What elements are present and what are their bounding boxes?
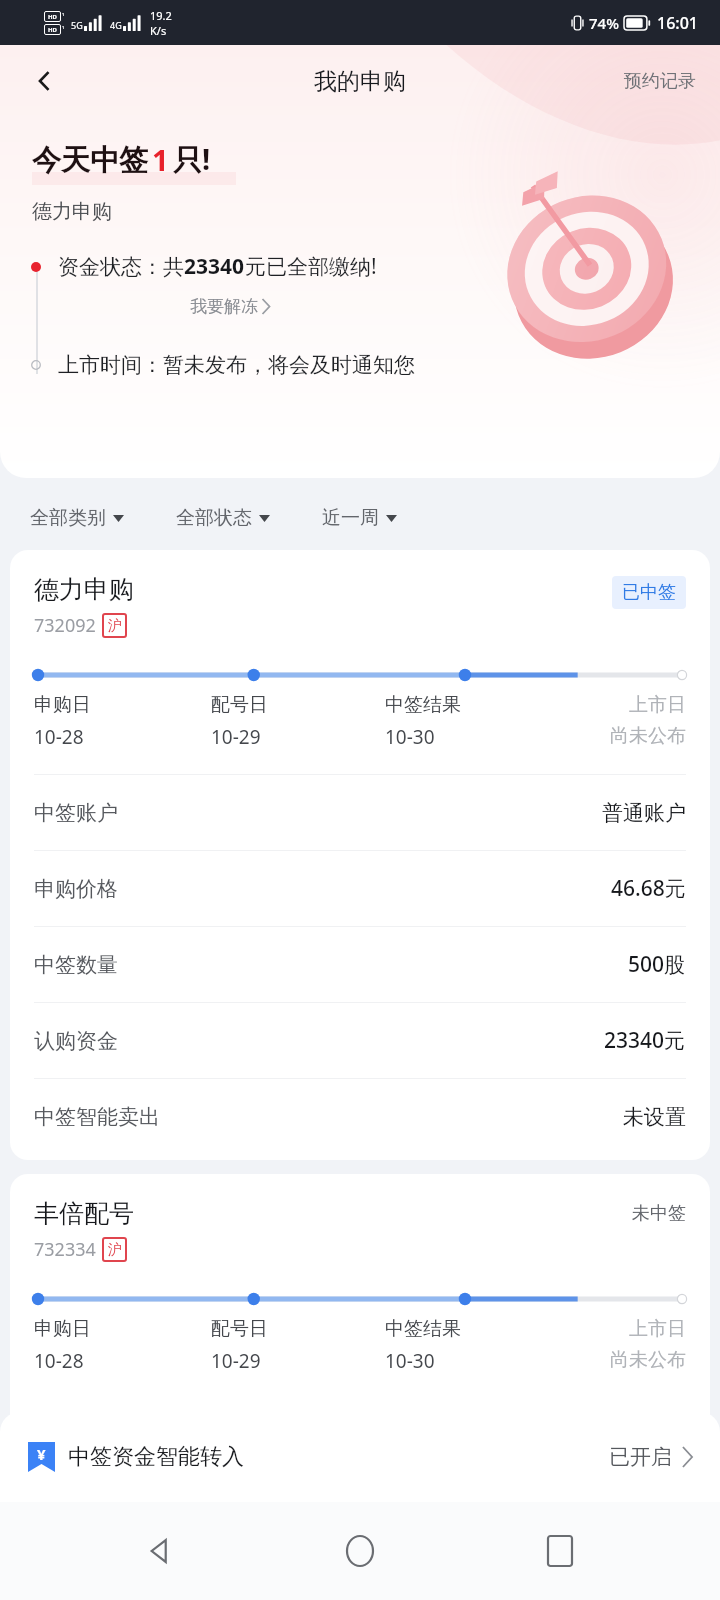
staticText: 74% <box>589 13 619 33</box>
staticText: 普通账户 <box>602 800 686 826</box>
staticText: 我要解冻 <box>190 296 258 317</box>
button[interactable]: 我要解冻 <box>190 293 271 320</box>
staticText: 732092 <box>34 613 96 638</box>
staticText: 中签智能卖出 <box>34 1104 160 1130</box>
staticText: 尚未公布 <box>564 1348 686 1372</box>
staticText: HD <box>48 13 57 21</box>
staticText: 申购日 <box>34 693 211 717</box>
button[interactable]: 预约记录 <box>620 62 700 101</box>
staticText: 中签数量 <box>34 952 118 978</box>
staticText: 1 <box>152 140 169 179</box>
staticText: 预约记录 <box>624 70 696 93</box>
staticText: HD <box>48 26 57 34</box>
staticText: 认购资金 <box>34 1028 118 1054</box>
staticText: 配号日 <box>211 693 385 717</box>
staticText: 沪 <box>108 617 122 635</box>
staticText: ¹ <box>62 12 65 22</box>
staticText: 上市日 <box>564 693 686 717</box>
staticText: 全部状态 <box>176 506 252 530</box>
button[interactable]: 丰倍配号 <box>10 1174 710 1434</box>
staticText: 全部类别 <box>30 506 106 530</box>
button[interactable]: 主屏幕 <box>330 1521 390 1581</box>
staticText: ¥ <box>37 1444 46 1464</box>
staticText: 500股 <box>628 950 686 979</box>
staticText: K/s <box>150 23 167 38</box>
staticText: 10-29 <box>211 724 385 750</box>
staticText: 申购价格 <box>34 876 118 902</box>
button[interactable]: 返回 <box>130 1521 190 1581</box>
staticText: 尚未公布 <box>564 724 686 748</box>
staticText: 丰倍配号 <box>34 1198 134 1229</box>
button[interactable]: 近一周 <box>322 500 397 536</box>
button[interactable]: 德力申购 <box>10 550 710 1160</box>
staticText: 10-29 <box>211 1348 385 1374</box>
staticText: 未中签 <box>632 1202 686 1225</box>
staticText: 10-28 <box>34 1348 211 1374</box>
staticText: 16:01 <box>657 12 698 34</box>
staticText: 只! <box>173 139 211 179</box>
staticText: 配号日 <box>211 1317 385 1341</box>
staticText: 中签账户 <box>34 800 118 826</box>
staticText: 已开启 <box>609 1444 672 1470</box>
staticText: 近一周 <box>322 506 379 530</box>
staticText: 已中签 <box>622 581 676 604</box>
staticText: 我的申购 <box>314 67 406 96</box>
staticText: 732334 <box>34 1237 96 1262</box>
staticText: 4G <box>110 19 122 31</box>
staticText: 23340元 <box>604 1026 686 1055</box>
button[interactable]: 返回 <box>18 54 72 108</box>
staticText: 46.68元 <box>611 874 686 903</box>
staticText: 上市日 <box>564 1317 686 1341</box>
staticText: 中签结果 <box>385 693 564 717</box>
staticText: 中签资金智能转入 <box>68 1443 244 1471</box>
staticText: 10-30 <box>385 1348 564 1374</box>
staticText: 5G <box>71 19 83 31</box>
staticText: ¹ <box>62 25 65 35</box>
staticText: 23340 <box>184 252 245 281</box>
button[interactable]: 全部类别 <box>30 500 124 536</box>
staticText: 上市时间：暂未发布，将会及时通知您 <box>58 352 415 378</box>
staticText: 今天中签 <box>32 142 148 179</box>
button[interactable]: 最近任务 <box>530 1521 590 1581</box>
staticText: 德力申购 <box>32 199 112 224</box>
button[interactable]: 中签资金智能转入 <box>0 1412 720 1502</box>
staticText: 未设置 <box>623 1104 686 1130</box>
button[interactable]: 全部状态 <box>176 500 270 536</box>
staticText: 德力申购 <box>34 574 134 605</box>
staticText: 10-30 <box>385 724 564 750</box>
staticText: 沪 <box>108 1241 122 1259</box>
staticText: 元已全部缴纳! <box>245 252 377 281</box>
staticText: 10-28 <box>34 724 211 750</box>
staticText: 中签结果 <box>385 1317 564 1341</box>
staticText: 资金状态：共 <box>58 254 184 280</box>
staticText: 19.2 <box>150 8 172 23</box>
staticText: 申购日 <box>34 1317 211 1341</box>
